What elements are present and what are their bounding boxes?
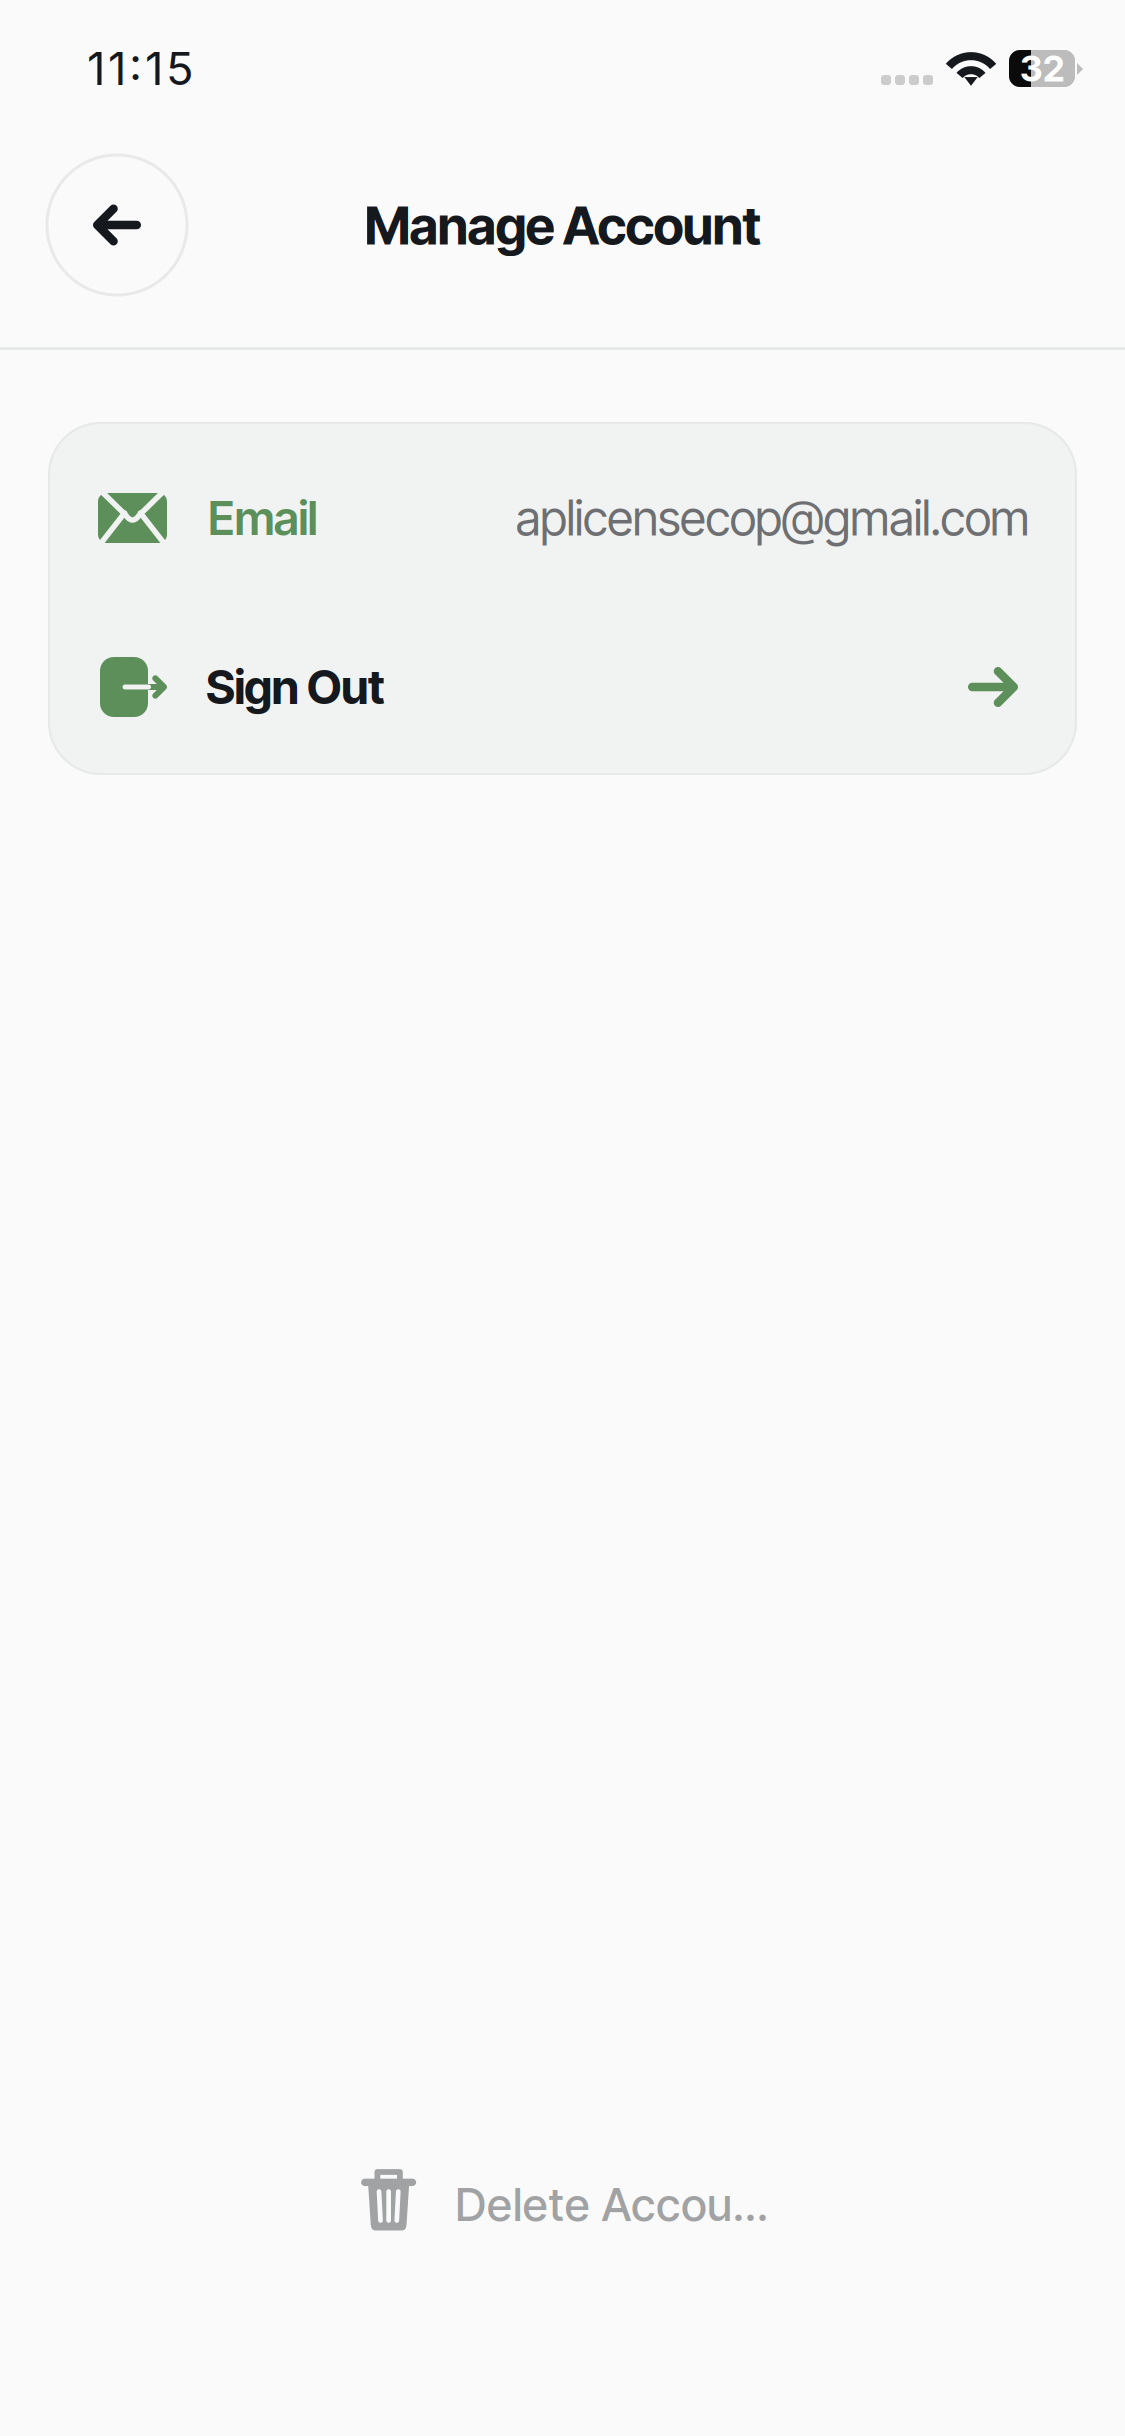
staticText: 32 xyxy=(1020,47,1064,90)
staticText: aplicensecop@gmail.com xyxy=(516,489,1030,547)
button[interactable]: Delete Account xyxy=(337,2161,798,2257)
staticText: 11:15 xyxy=(87,41,194,96)
staticText: Sign Out xyxy=(206,659,385,715)
button[interactable]: Back xyxy=(47,155,187,295)
button[interactable]: Sign Out xyxy=(100,647,1018,727)
staticText: Email xyxy=(208,490,318,546)
staticText: Delete Account xyxy=(455,2177,774,2232)
staticText: Manage Account xyxy=(364,194,760,257)
